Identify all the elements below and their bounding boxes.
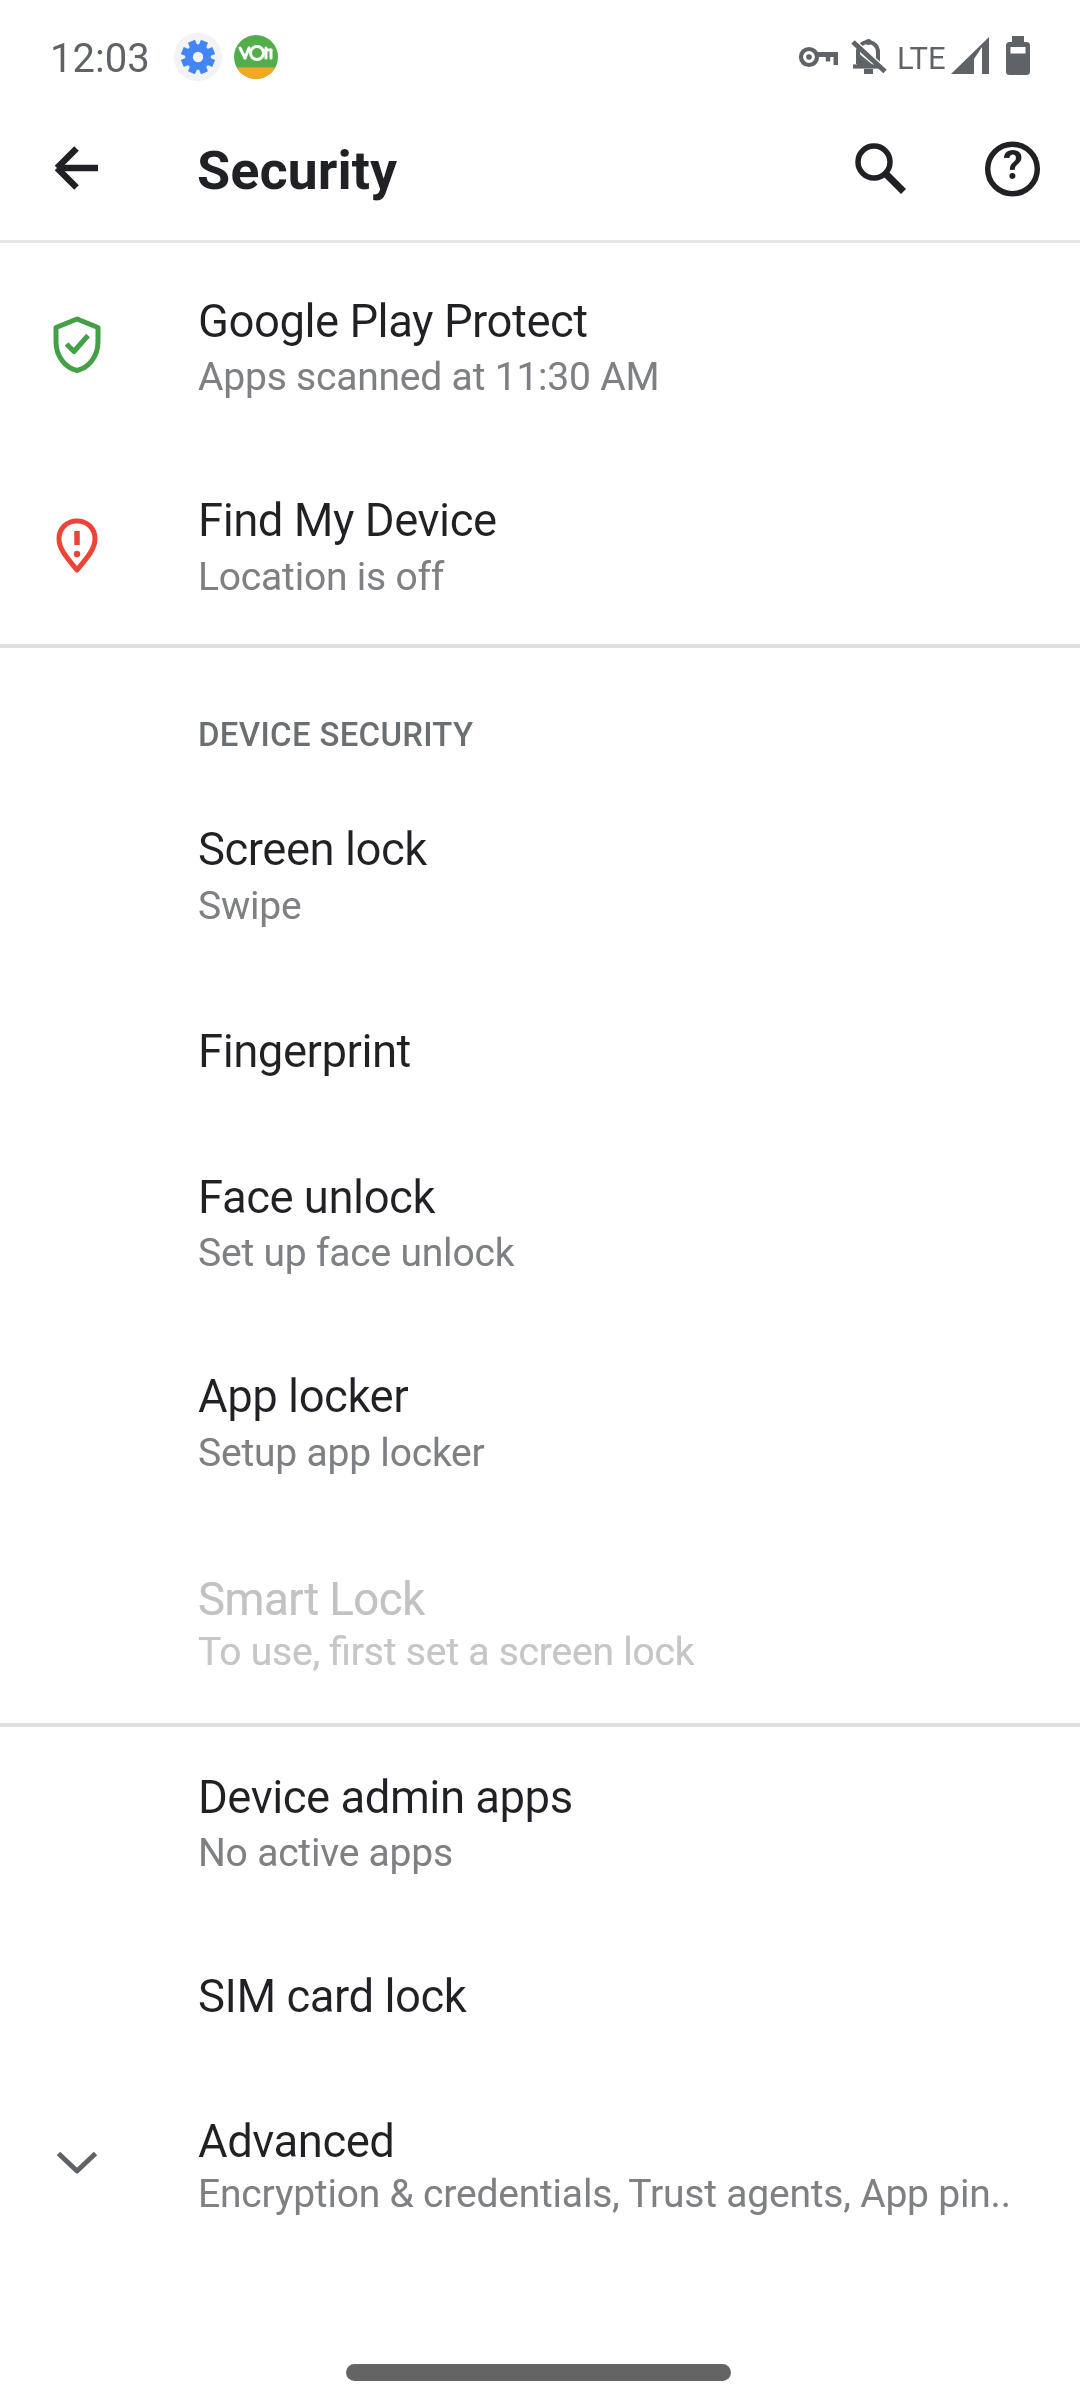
staticText: Encryption & credentials, Trust agents, …	[198, 2171, 1011, 2217]
staticText: Face unlock	[198, 1171, 435, 1224]
button[interactable]	[0, 443, 1080, 638]
staticText: Swipe	[198, 883, 302, 929]
staticText: To use, first set a screen lock	[198, 1629, 695, 1675]
staticText: Apps scanned at 11:30 AM	[198, 354, 660, 400]
button[interactable]	[0, 1522, 1080, 1717]
button[interactable]	[53, 144, 101, 192]
staticText: Set up face unlock	[198, 1230, 515, 1276]
staticText: App locker	[198, 1370, 409, 1423]
button[interactable]	[0, 1720, 1080, 1915]
staticText: ?	[1003, 142, 1023, 189]
staticText: LTE	[897, 40, 946, 76]
button[interactable]	[0, 773, 1080, 968]
button[interactable]	[0, 244, 1080, 439]
staticText: Fingerprint	[198, 1025, 411, 1078]
button[interactable]	[0, 974, 1080, 1122]
staticText: No active apps	[198, 1830, 453, 1876]
staticText: Device admin apps	[198, 1771, 573, 1824]
staticText: Google Play Protect	[198, 295, 588, 348]
button[interactable]	[981, 137, 1045, 201]
button[interactable]	[0, 1120, 1080, 1315]
staticText: Smart Lock	[198, 1573, 425, 1626]
staticText: 12:03	[50, 35, 150, 82]
staticText: Find My Device	[198, 494, 497, 547]
staticText: SIM card lock	[198, 1970, 467, 2023]
staticText: Advanced	[198, 2115, 395, 2168]
button[interactable]	[848, 136, 912, 200]
staticText: DEVICE SECURITY	[198, 715, 474, 754]
button[interactable]	[0, 1919, 1080, 2067]
staticText: Setup app locker	[198, 1430, 485, 1476]
staticText: Location is off	[198, 554, 445, 600]
staticText: Screen lock	[198, 823, 427, 876]
staticText: Security	[197, 139, 398, 202]
button[interactable]	[0, 1319, 1080, 1514]
button[interactable]	[0, 2065, 1080, 2260]
